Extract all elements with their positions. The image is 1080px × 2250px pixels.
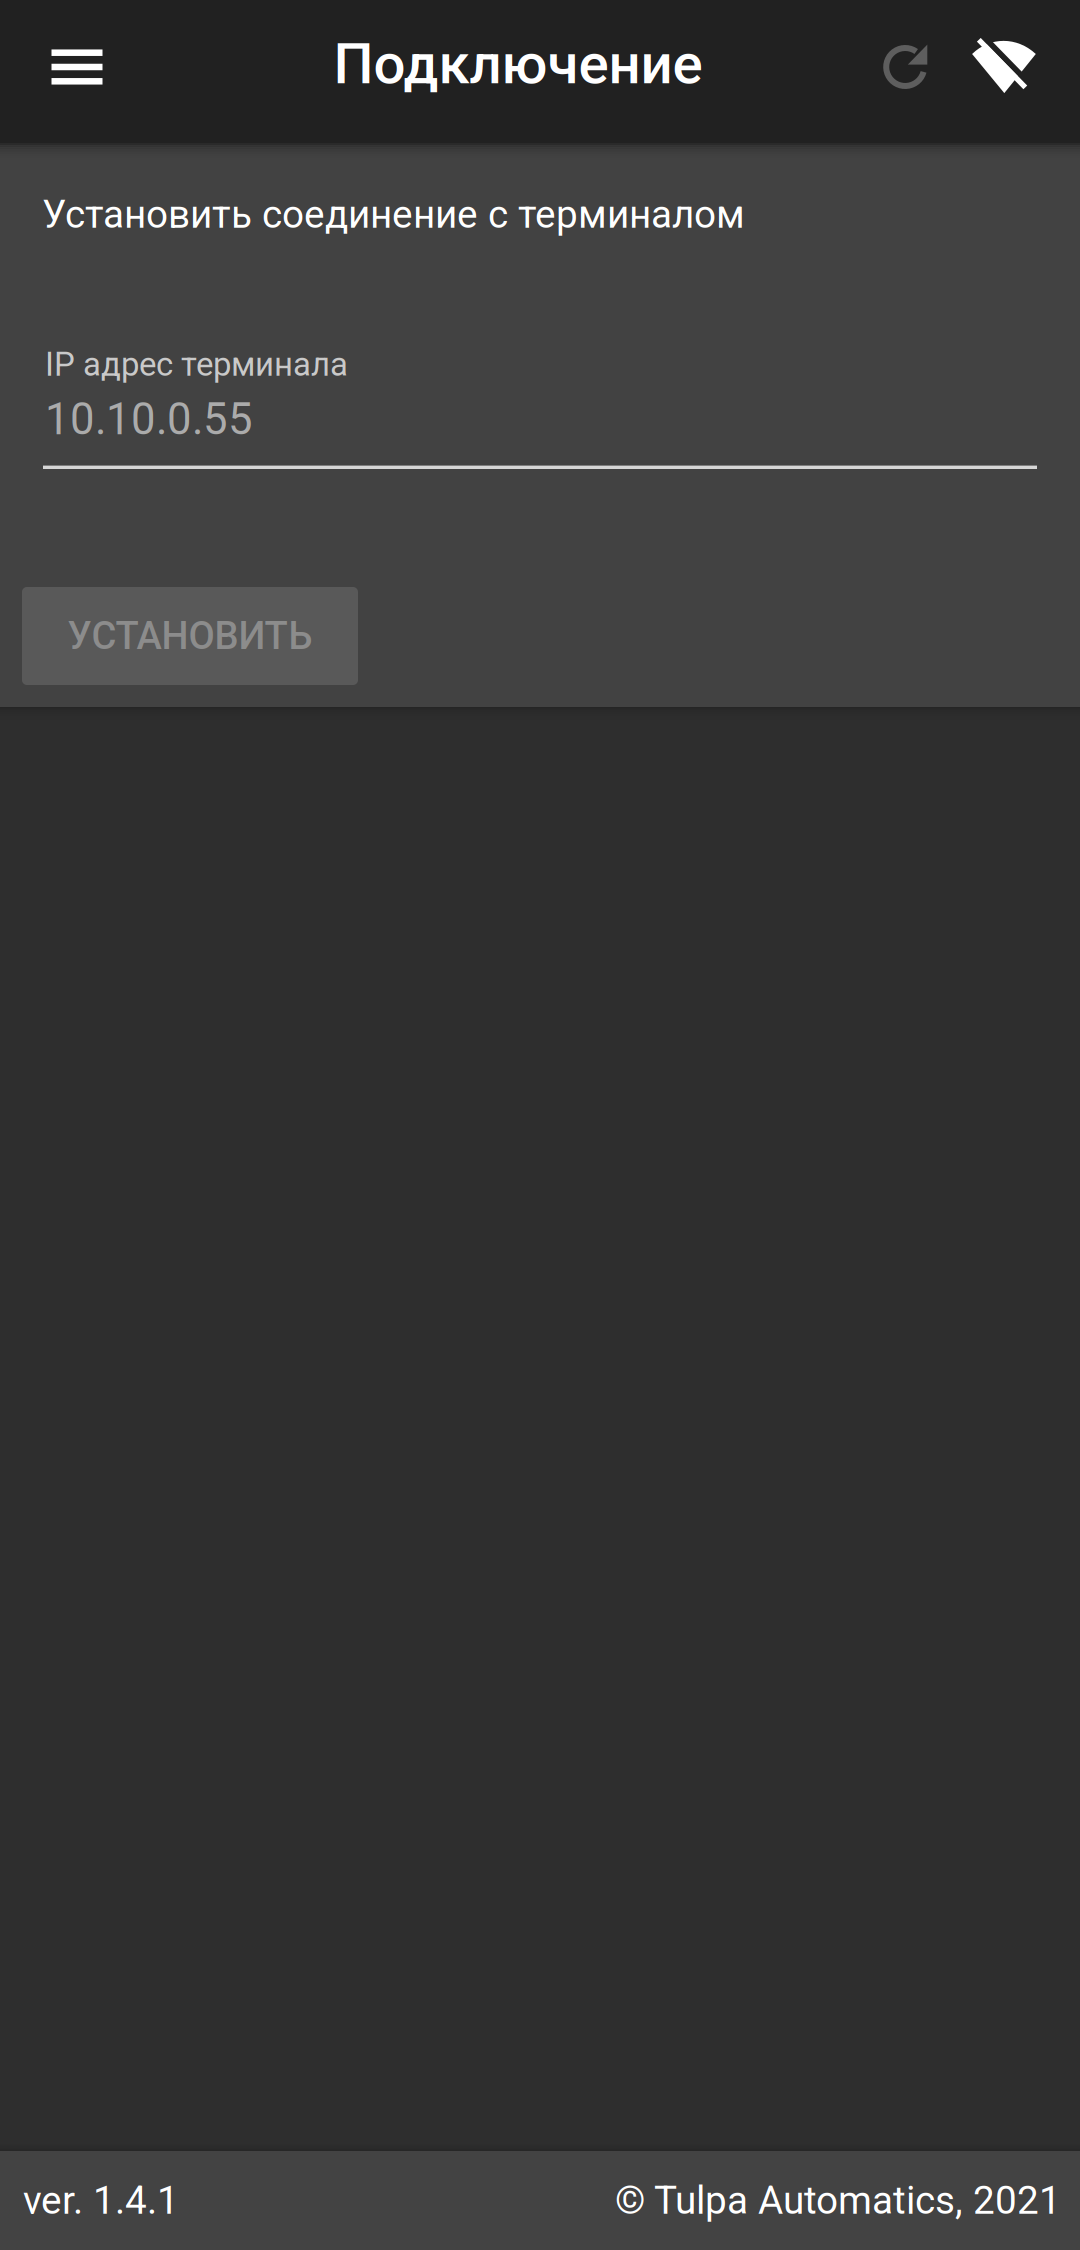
button[interactable]: Обновить [850, 0, 960, 134]
staticText: IP адрес терминала [45, 345, 348, 384]
staticText: Подключение [333, 31, 702, 97]
button[interactable]: IP адрес терминала [43, 345, 1037, 469]
staticText: УСТАНОВИТЬ [67, 614, 312, 658]
button[interactable]: Нет подключения [950, 0, 1060, 132]
button[interactable]: Меню [10, 0, 144, 134]
staticText: © Tulpa Automatics, 2021 [615, 2178, 1061, 2223]
staticText: 10.10.0.55 [45, 394, 253, 445]
staticText: ver. 1.4.1 [23, 2178, 179, 2223]
button[interactable]: УСТАНОВИТЬ [22, 587, 358, 685]
staticText: Установить соединение с терминалом [42, 192, 745, 237]
